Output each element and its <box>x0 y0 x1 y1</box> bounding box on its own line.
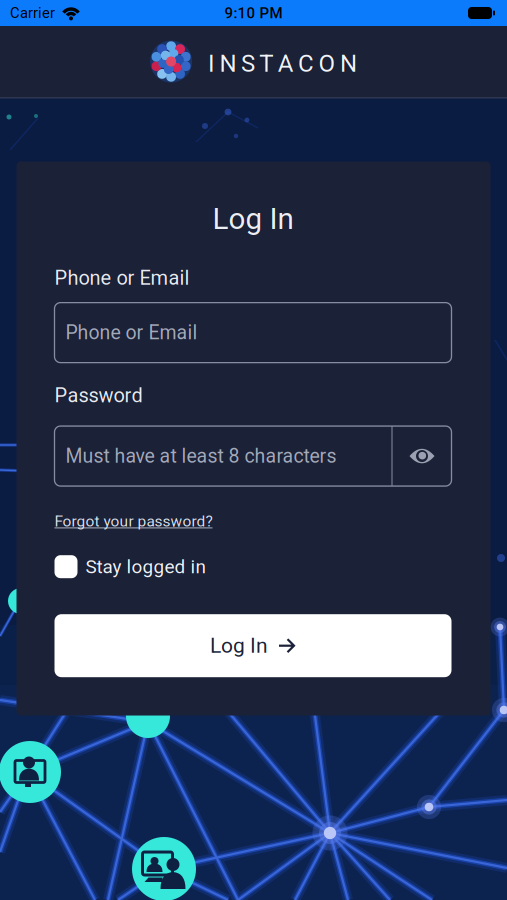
staticText: Phone or Email <box>54 266 189 290</box>
staticText: 9:10 PM <box>224 4 282 22</box>
staticText: Log In <box>210 633 268 658</box>
staticText: A <box>278 49 294 77</box>
staticText: I <box>208 49 215 77</box>
button[interactable]: Log In <box>54 614 451 677</box>
staticText: Carrier <box>10 4 55 22</box>
staticText: Log In <box>212 201 293 236</box>
staticText: O <box>318 49 335 77</box>
staticText: Password <box>54 384 142 407</box>
staticText: C <box>298 49 314 77</box>
staticText: Stay logged in <box>85 556 205 578</box>
staticText: Must have at least 8 characters <box>65 445 336 467</box>
staticText: N <box>340 49 357 77</box>
button[interactable]: Forgot your password? <box>54 512 212 530</box>
button[interactable]: Must have at least 8 characters <box>54 426 451 486</box>
staticText: S <box>241 49 255 77</box>
button[interactable]: Phone or Email <box>54 303 451 363</box>
staticText: T <box>259 49 273 77</box>
staticText: N <box>219 49 236 77</box>
button[interactable]: Stay logged in <box>54 555 205 578</box>
staticText: Phone or Email <box>65 321 197 344</box>
staticText: Forgot your password? <box>54 512 212 530</box>
button[interactable]: Show password <box>392 426 451 486</box>
